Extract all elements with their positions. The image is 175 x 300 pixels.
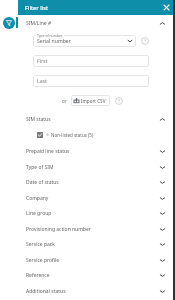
staticText: Provisioning action number <box>26 226 91 233</box>
button[interactable]: Company <box>18 191 175 205</box>
staticText: Additional status <box>26 288 66 295</box>
button[interactable]: Close <box>161 2 172 13</box>
staticText: SIM/Line # <box>26 20 52 27</box>
staticText: Reference <box>26 272 50 279</box>
staticText: Type of number <box>37 33 63 38</box>
staticText: Prepaid line status <box>26 148 70 155</box>
button[interactable]: Provisioning action number <box>18 222 175 236</box>
staticText: SIM status <box>26 116 51 123</box>
button[interactable]: Help <box>141 37 149 45</box>
button[interactable]: SIM status <box>18 112 175 126</box>
staticText: Serial number <box>37 38 71 45</box>
button[interactable]: Help about import <box>115 97 123 105</box>
button[interactable]: Serial number <box>33 35 136 47</box>
staticText: Non-listed status (5) <box>51 132 94 138</box>
staticText: Import CSV <box>81 98 106 104</box>
button[interactable]: Non-listed status (5) <box>37 129 94 140</box>
button[interactable]: Line group <box>18 206 175 220</box>
staticText: Date of status <box>26 179 59 186</box>
staticText: Last <box>37 78 47 85</box>
button[interactable]: Filter <box>3 17 15 29</box>
button[interactable]: Last <box>33 75 149 87</box>
staticText: or <box>62 98 67 104</box>
button[interactable]: First <box>33 55 149 67</box>
staticText: Service pack <box>26 241 55 248</box>
button[interactable]: Additional status <box>18 284 175 298</box>
button[interactable]: Service profile <box>18 253 175 267</box>
button[interactable]: SIM/Line # <box>18 16 175 30</box>
button[interactable]: Date of status <box>18 175 175 189</box>
button[interactable]: Reference <box>18 268 175 282</box>
button[interactable]: Prepaid line status <box>18 144 175 158</box>
staticText: Type of SIM <box>26 164 54 171</box>
staticText: First <box>37 58 48 65</box>
staticText: Company <box>26 195 49 202</box>
button[interactable]: Type of SIM <box>18 160 175 174</box>
staticText: Service profile <box>26 257 60 264</box>
button[interactable]: Import CSV <box>71 95 110 106</box>
button[interactable]: Service pack <box>18 237 175 251</box>
staticText: Line group <box>26 210 52 217</box>
staticText: Filter list <box>25 4 49 12</box>
